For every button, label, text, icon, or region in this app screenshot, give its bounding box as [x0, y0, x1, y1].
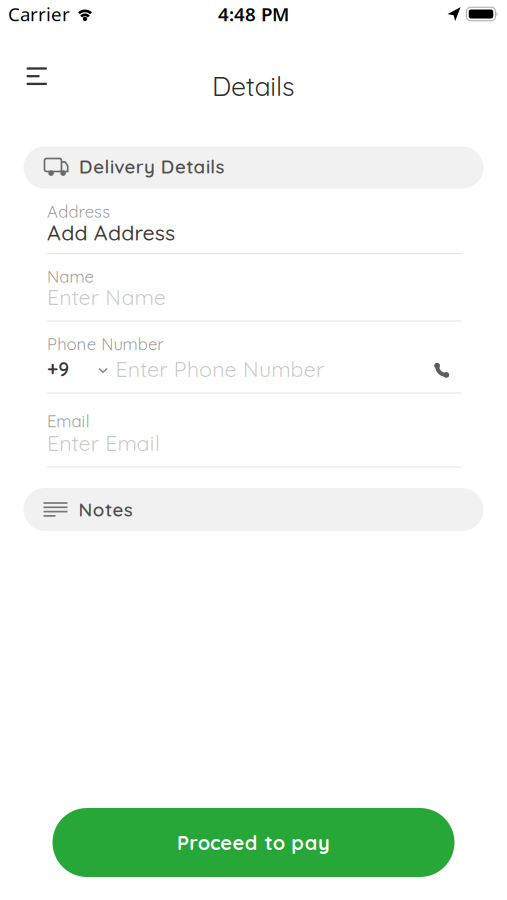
- staticText: +9: [47, 357, 69, 381]
- staticText: Name: [47, 266, 94, 287]
- button[interactable]: Name: [0, 265, 507, 322]
- staticText: Email: [47, 411, 90, 431]
- staticText: Notes: [78, 498, 133, 521]
- staticText: Details: [212, 69, 295, 103]
- staticText: Proceed to pay: [177, 830, 330, 855]
- staticText: Carrier: [8, 2, 70, 26]
- button[interactable]: Notes: [23, 488, 483, 531]
- staticText: 4:48 PM: [218, 2, 289, 26]
- button[interactable]: Menu: [19, 58, 55, 94]
- button[interactable]: Address: [0, 199, 507, 255]
- staticText: Enter Name: [47, 284, 166, 310]
- staticText: Phone Number: [47, 334, 163, 354]
- button[interactable]: Delivery Details: [23, 146, 483, 188]
- button[interactable]: Phone Number: [0, 333, 507, 394]
- staticText: Delivery Details: [79, 155, 224, 178]
- staticText: Enter Phone Number: [115, 356, 324, 382]
- staticText: Add Address: [47, 219, 175, 246]
- button[interactable]: Proceed to pay: [52, 808, 454, 877]
- staticText: Enter Email: [47, 430, 160, 456]
- staticText: Address: [47, 201, 110, 222]
- button[interactable]: Email: [0, 410, 507, 468]
